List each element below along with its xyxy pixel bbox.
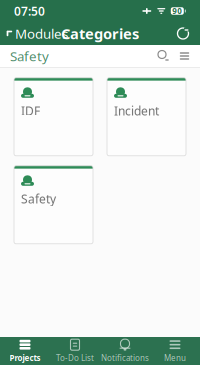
button[interactable]: Notifications	[100, 335, 150, 365]
button[interactable]: Search	[152, 49, 175, 62]
staticText: IDF	[21, 103, 40, 119]
staticText: 07:50	[14, 3, 45, 19]
staticText: Notifications	[101, 353, 149, 363]
button[interactable]: IDF	[14, 78, 93, 156]
button[interactable]: Modules	[6, 21, 74, 46]
button[interactable]: Refresh	[172, 22, 194, 44]
button[interactable]: Safety	[14, 166, 93, 244]
staticText: Safety	[10, 47, 49, 65]
button[interactable]: Incident	[107, 78, 186, 156]
staticText: To-Do List	[56, 353, 94, 363]
staticText: Categories	[61, 24, 139, 43]
staticText: Modules	[15, 25, 68, 42]
staticText: Safety	[21, 191, 56, 207]
button[interactable]: Menu	[150, 335, 200, 365]
staticText: Menu	[164, 353, 186, 363]
button[interactable]: Projects	[0, 335, 50, 365]
staticText: 90	[172, 6, 182, 16]
staticText: Projects	[9, 353, 40, 363]
button[interactable]: List view	[175, 50, 190, 62]
staticText: Incident	[114, 103, 159, 119]
button[interactable]: To-Do List	[50, 335, 100, 365]
